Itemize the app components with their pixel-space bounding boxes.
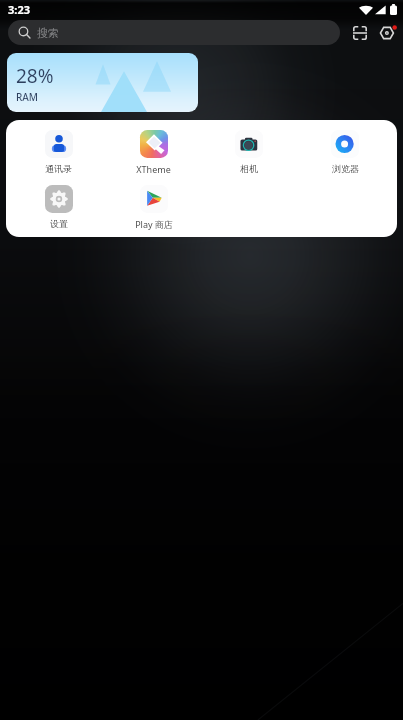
button[interactable]: 通讯录	[11, 130, 106, 174]
staticText: Play 商店	[135, 218, 173, 230]
button[interactable]: XTheme	[106, 130, 201, 175]
staticText: 通讯录	[45, 163, 72, 174]
staticText: 28%	[16, 63, 54, 89]
button[interactable]: 设置	[11, 185, 106, 229]
button[interactable]: Scan QR code	[347, 20, 373, 46]
staticText: RAM	[16, 90, 39, 104]
button[interactable]: 浏览器	[297, 130, 393, 174]
staticText: 浏览器	[332, 163, 359, 174]
staticText: 设置	[50, 218, 68, 229]
staticText: XTheme	[136, 163, 171, 175]
staticText: 3:23	[8, 2, 30, 17]
staticText: 相机	[240, 163, 258, 174]
button[interactable]: Settings	[375, 20, 401, 46]
button[interactable]: 相机	[201, 130, 297, 174]
staticText: 搜索	[37, 26, 59, 40]
button[interactable]: Play 商店	[106, 185, 201, 230]
button[interactable]: 搜索	[8, 20, 340, 45]
button[interactable]: 28%	[7, 53, 198, 112]
